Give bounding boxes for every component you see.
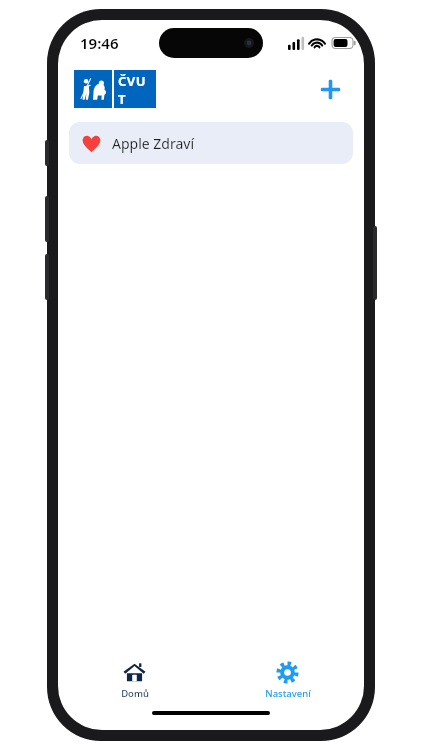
staticText: Nastavení — [265, 687, 311, 700]
staticText: Apple Zdraví — [112, 134, 195, 153]
staticText: ČVUT — [118, 72, 153, 106]
button[interactable]: Nastavení — [211, 652, 364, 708]
staticText: Domů — [121, 687, 149, 700]
button[interactable]: Apple Zdraví — [69, 122, 353, 164]
button[interactable]: Add — [310, 69, 350, 109]
button[interactable]: Domů — [58, 652, 211, 708]
staticText: 19:46 — [80, 33, 119, 53]
button[interactable]: ČVUT — [74, 70, 156, 108]
